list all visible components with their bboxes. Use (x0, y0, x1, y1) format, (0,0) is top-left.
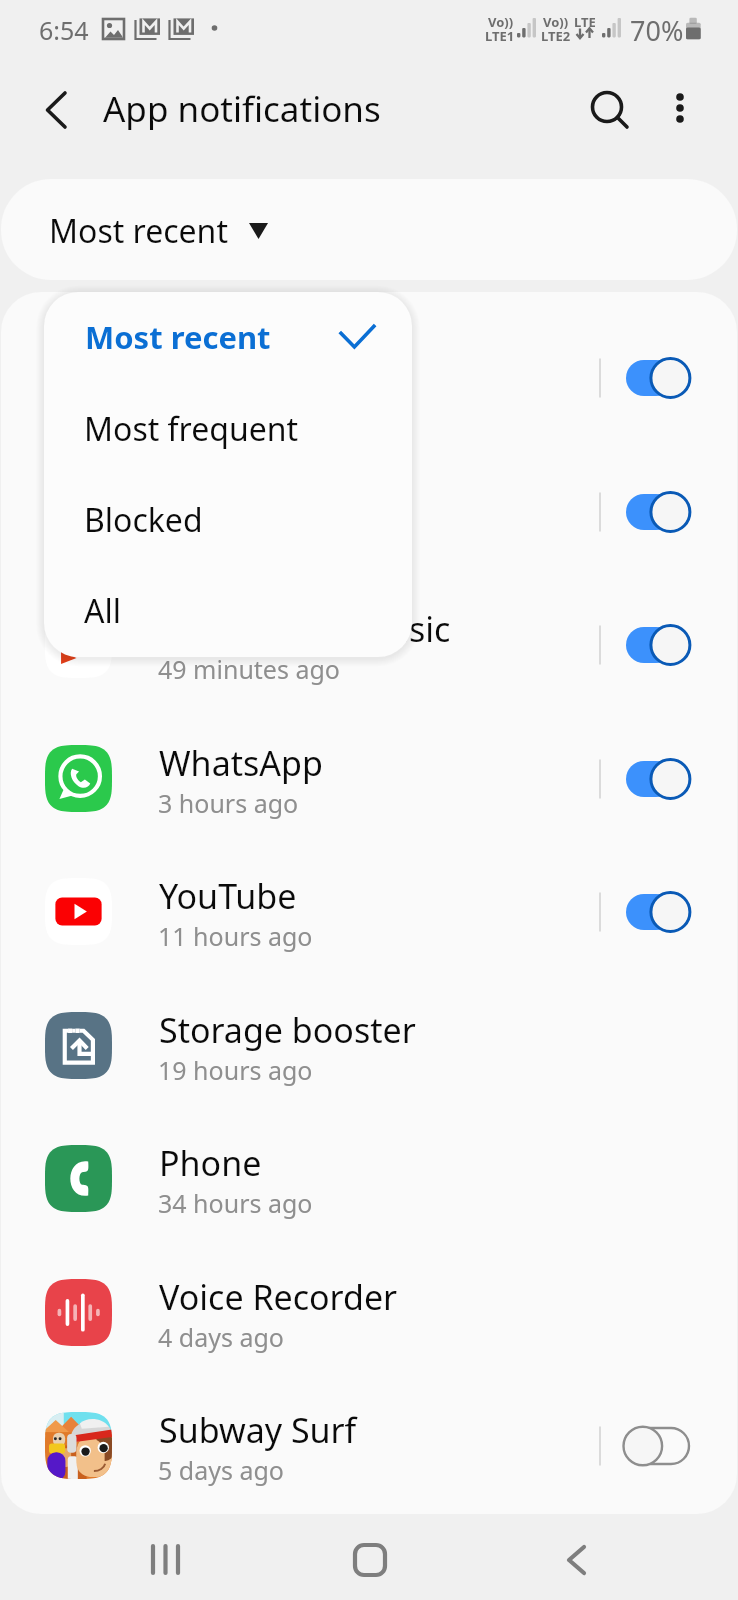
button[interactable]: More options (656, 80, 706, 130)
button[interactable]: Most recent (44, 292, 412, 383)
button[interactable]: Allow notifications for WhatsApp (604, 732, 722, 826)
staticText: Subway Surf (159, 1407, 357, 1453)
staticText: LTE1 (485, 27, 515, 45)
button[interactable]: Messages (1, 436, 737, 569)
staticText: 49 minutes ago (158, 652, 340, 686)
staticText: 70% (630, 12, 684, 49)
staticText: 34 hours ago (158, 1186, 313, 1220)
staticText: 12 minutes ago (158, 385, 340, 419)
staticText: Most recent (49, 209, 228, 253)
button[interactable]: Blocked (44, 474, 412, 565)
staticText: 4 days ago (158, 1320, 284, 1354)
staticText: Vo)) (543, 13, 569, 31)
staticText: 19 hours ago (158, 1053, 313, 1087)
staticText: 5 days ago (158, 1453, 284, 1487)
button[interactable]: Search (580, 80, 634, 134)
staticText: LTE2 (541, 27, 571, 45)
staticText: WhatsApp (159, 740, 323, 786)
staticText: All (84, 589, 121, 633)
staticText: Google Play Music (159, 606, 451, 652)
button[interactable]: All (44, 565, 412, 656)
button[interactable]: Home (325, 1514, 415, 1600)
button[interactable]: Gallery (1, 302, 737, 435)
staticText: 3 hours ago (158, 786, 299, 820)
staticText: Most frequent (84, 407, 299, 451)
button[interactable]: WhatsApp (1, 703, 737, 836)
button[interactable]: Recent apps (120, 1514, 210, 1600)
button[interactable]: Google Play Music (1, 569, 737, 702)
staticText: Messages (159, 473, 318, 519)
button[interactable]: Back (532, 1514, 622, 1600)
button[interactable]: YouTube (1, 836, 737, 969)
button[interactable]: Allow notifications for Messages (604, 465, 722, 559)
staticText: Storage booster (159, 1007, 416, 1053)
staticText: Vo)) (488, 13, 514, 31)
staticText: 6:54 (39, 13, 89, 47)
staticText: YouTube (159, 873, 297, 919)
button[interactable]: Most recent (1, 179, 737, 280)
button[interactable]: Subway Surf (1, 1370, 737, 1503)
button[interactable]: Allow notifications for Subway Surf (604, 1399, 722, 1493)
staticText: Most recent (85, 316, 271, 358)
button[interactable]: Voice Recorder (1, 1237, 737, 1370)
button[interactable]: Allow notifications for YouTube (604, 865, 722, 959)
button[interactable]: Phone (1, 1103, 737, 1236)
button[interactable]: Most frequent (44, 383, 412, 474)
button[interactable]: Allow notifications for Google Play Musi… (604, 598, 722, 692)
button[interactable]: Storage booster (1, 970, 737, 1103)
staticText: LTE (574, 13, 596, 31)
staticText: 34 minutes ago (158, 519, 340, 553)
button[interactable]: Allow notifications for Gallery (604, 331, 722, 425)
button[interactable]: Navigate up (32, 84, 82, 134)
staticText: Voice Recorder (159, 1274, 398, 1320)
staticText: App notifications (103, 85, 381, 133)
staticText: Gallery (159, 339, 271, 385)
staticText: Blocked (84, 498, 203, 542)
staticText: Phone (159, 1140, 262, 1186)
staticText: 11 hours ago (158, 919, 313, 953)
